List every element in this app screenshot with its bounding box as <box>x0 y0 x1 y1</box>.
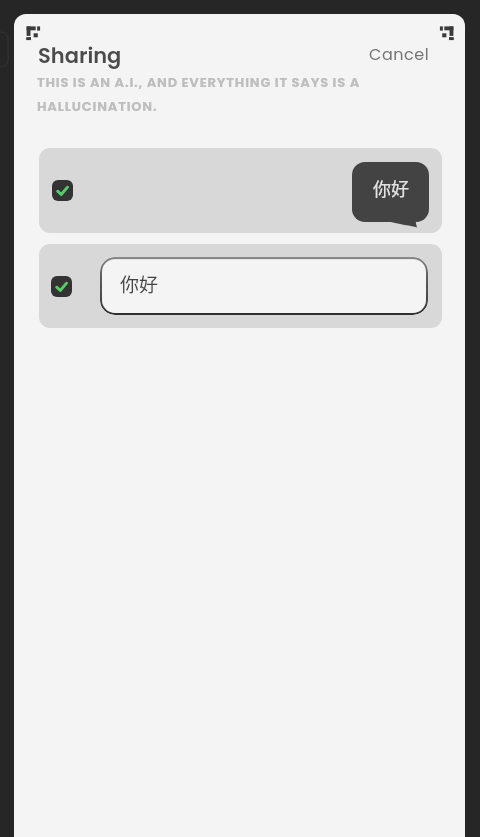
staticText: Sharing <box>38 41 122 70</box>
staticText: Cancel <box>369 43 430 65</box>
button[interactable]: Selected <box>39 148 442 233</box>
staticText: 你好 <box>373 175 409 201</box>
button[interactable]: 你好 <box>100 257 428 315</box>
button[interactable]: Selected <box>39 244 442 328</box>
button[interactable]: Selected <box>52 180 73 201</box>
button[interactable]: Selected <box>51 276 72 297</box>
other: Collapse <box>439 26 454 41</box>
other: Expand <box>26 26 41 41</box>
button[interactable]: Cancel <box>369 43 430 65</box>
staticText: 你好 <box>120 270 159 298</box>
staticText: THIS IS AN A.I., AND EVERYTHING IT SAYS … <box>37 73 377 115</box>
